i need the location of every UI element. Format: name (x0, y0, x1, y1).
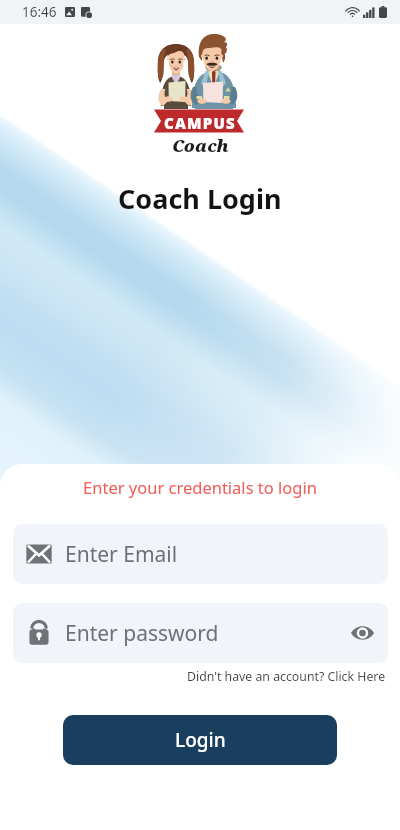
button[interactable]: Enter Email (13, 524, 388, 584)
staticText: Enter your credentials to login (0, 476, 400, 498)
staticText: Login (175, 727, 226, 753)
other: Show password (351, 625, 374, 641)
staticText: Coach (172, 134, 229, 157)
staticText: Coach Login (118, 180, 282, 217)
staticText: Enter Email (65, 540, 178, 569)
button[interactable]: Login (63, 715, 337, 765)
staticText: Enter password (65, 619, 219, 648)
button[interactable]: Didn't have an account? Click Here (187, 668, 386, 685)
staticText: CAMPUS (164, 113, 236, 133)
staticText: 16:46 (22, 3, 57, 21)
button[interactable]: Enter password (13, 603, 388, 663)
